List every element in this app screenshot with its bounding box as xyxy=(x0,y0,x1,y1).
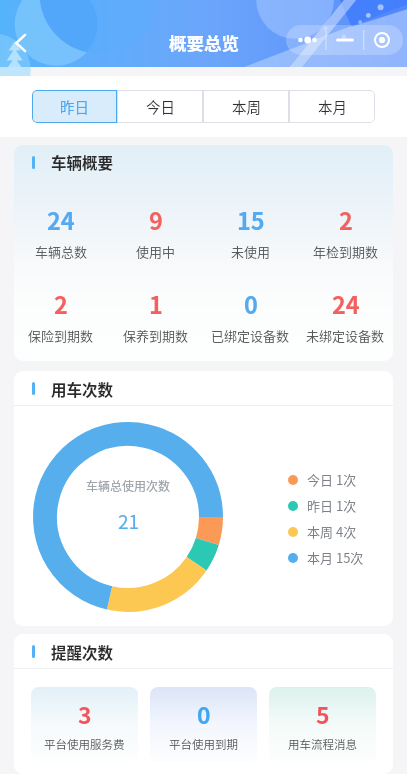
staticText: 年检到期数 xyxy=(313,242,379,261)
staticText: 保养到期数 xyxy=(123,326,189,345)
button[interactable]: 0 xyxy=(203,287,298,345)
staticText: 今日 xyxy=(146,96,175,117)
staticText: 用车流程消息 xyxy=(288,736,357,753)
staticText: 用车次数 xyxy=(51,378,114,400)
staticText: 本月 xyxy=(318,96,347,117)
staticText: 24 xyxy=(332,287,360,321)
staticText: 昨日 xyxy=(60,96,89,117)
staticText: 车辆概要 xyxy=(51,151,114,173)
staticText: 使用中 xyxy=(136,242,176,261)
button[interactable]: 2 xyxy=(14,287,108,345)
staticText: 3 xyxy=(78,697,92,730)
button[interactable]: 24 xyxy=(14,203,108,261)
button[interactable]: 本月 xyxy=(289,90,375,123)
staticText: 平台使用服务费 xyxy=(44,736,125,753)
button[interactable]: 1 xyxy=(108,287,203,345)
button[interactable]: 今日 1次 xyxy=(288,470,357,489)
button[interactable]: 本周 4次 xyxy=(288,522,357,541)
staticText: 概要总览 xyxy=(169,30,239,55)
button[interactable]: 24 xyxy=(298,287,393,345)
button[interactable]: 本月 15次 xyxy=(288,548,364,567)
staticText: 0 xyxy=(244,287,258,321)
button[interactable]: 2 xyxy=(298,203,393,261)
staticText: 本周 xyxy=(232,96,261,117)
staticText: 提醒次数 xyxy=(51,641,114,663)
staticText: 9 xyxy=(149,203,163,237)
button[interactable]: 15 xyxy=(203,203,298,261)
button[interactable]: 3 xyxy=(31,687,138,762)
staticText: 本周 4次 xyxy=(307,522,357,541)
button[interactable]: 9 xyxy=(108,203,203,261)
button[interactable]: 昨日 1次 xyxy=(288,496,357,515)
staticText: 昨日 1次 xyxy=(307,496,357,515)
staticText: 已绑定设备数 xyxy=(211,326,290,345)
staticText: 2 xyxy=(54,287,68,321)
staticText: 未绑定设备数 xyxy=(306,326,385,345)
staticText: 平台使用到期 xyxy=(169,736,238,753)
staticText: 15 xyxy=(237,203,265,237)
button[interactable]: More xyxy=(286,25,326,55)
staticText: 车辆总数 xyxy=(35,242,88,261)
staticText: 5 xyxy=(316,697,330,730)
staticText: 未使用 xyxy=(231,242,271,261)
button[interactable]: 5 xyxy=(269,687,376,762)
button[interactable]: 0 xyxy=(150,687,257,762)
staticText: 本月 15次 xyxy=(307,548,364,567)
staticText: 2 xyxy=(339,203,353,237)
staticText: 0 xyxy=(197,697,211,730)
staticText: 今日 1次 xyxy=(307,470,357,489)
button[interactable]: Back xyxy=(5,27,37,59)
staticText: 21 xyxy=(118,507,140,535)
button[interactable]: 本周 xyxy=(203,90,289,123)
staticText: 车辆总使用次数 xyxy=(86,477,171,494)
button[interactable]: Close xyxy=(363,25,403,55)
staticText: 24 xyxy=(47,203,75,237)
button[interactable]: 今日 xyxy=(117,90,203,123)
staticText: 1 xyxy=(149,287,163,321)
staticText: 保险到期数 xyxy=(28,326,94,345)
button[interactable]: 昨日 xyxy=(32,90,117,123)
button[interactable]: Minimize xyxy=(326,25,363,55)
